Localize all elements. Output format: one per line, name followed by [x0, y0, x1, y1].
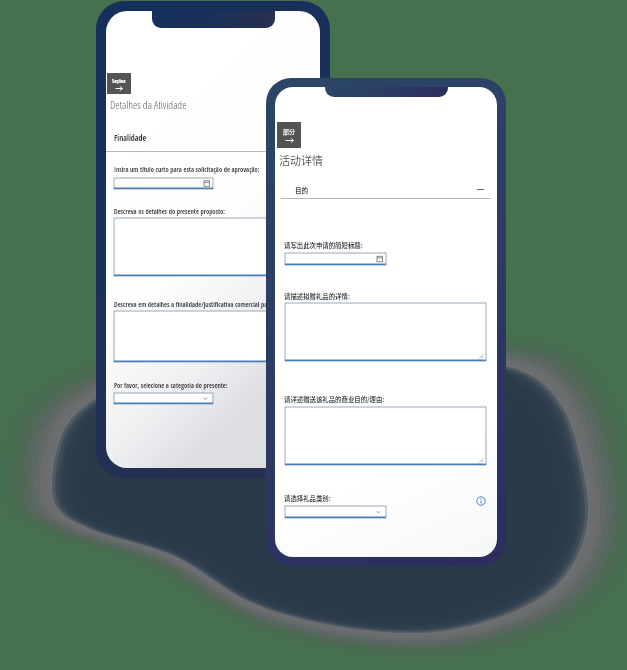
staticText: 请选择礼品类别: [284, 494, 331, 503]
staticText: Finalidade [114, 132, 147, 143]
staticText: Descreva em detalhes a finalidade/justif… [114, 300, 273, 309]
staticText: 活动详情 [279, 152, 323, 168]
staticText: 部分 [283, 127, 296, 136]
staticText: Por favor, selecione a categoria do pres… [114, 381, 228, 390]
button[interactable]: More information [476, 496, 486, 506]
button[interactable] [114, 393, 213, 404]
staticText: 请描述拟赠礼品的详情: [284, 292, 350, 301]
staticText: 目的 [295, 185, 309, 195]
button[interactable] [114, 178, 213, 189]
button[interactable] [114, 311, 316, 362]
button[interactable] [285, 253, 386, 265]
button[interactable] [114, 218, 316, 276]
button[interactable] [285, 506, 386, 518]
staticText: Insira um título curto para esta solicit… [114, 165, 260, 174]
button[interactable] [285, 407, 486, 465]
staticText: Seções [112, 77, 126, 84]
button[interactable]: Sections menu [277, 122, 301, 148]
staticText: 请写出此次申请的简短标题: [284, 241, 363, 250]
staticText: 请详述赠送该礼品的商业目的/理由: [284, 395, 385, 404]
button[interactable] [285, 303, 486, 361]
staticText: Descreva os detalhes do presente propost… [114, 207, 226, 216]
staticText: Detalhes da Atividade [110, 97, 187, 112]
button[interactable]: Sections menu [107, 73, 131, 94]
